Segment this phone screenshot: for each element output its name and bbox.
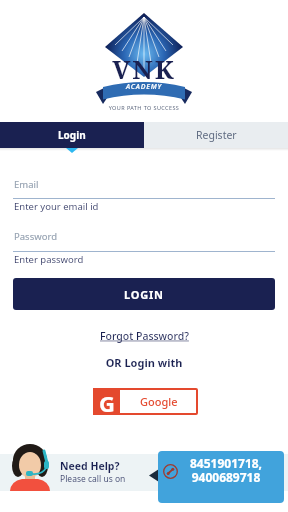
staticText: Enter your email id (14, 200, 99, 213)
staticText: Email (14, 178, 39, 191)
button[interactable]: LOGIN (13, 278, 275, 310)
staticText: Need Help? (60, 459, 120, 473)
staticText: G (99, 388, 115, 415)
button[interactable]: Login (0, 122, 144, 148)
staticText: Google (140, 394, 178, 409)
staticText: Enter password (14, 253, 84, 266)
staticText: 8451901718, (168, 455, 284, 471)
button[interactable]: G (93, 388, 198, 415)
staticText: OR Login with (0, 355, 288, 370)
staticText: ACADEMY (0, 82, 288, 92)
button[interactable]: Register (144, 122, 288, 148)
staticText: Register (196, 128, 237, 142)
staticText: Please call us on (60, 473, 126, 485)
staticText: VNK (0, 51, 288, 86)
staticText: LOGIN (124, 287, 164, 302)
button[interactable]: 8451901718, (158, 451, 284, 503)
staticText: YOUR PATH TO SUCCESS (0, 104, 288, 111)
button[interactable]: Forgot Password? (100, 329, 189, 343)
staticText: Password (14, 230, 57, 243)
staticText: Login (58, 128, 86, 142)
staticText: 9400689718 (168, 469, 284, 485)
